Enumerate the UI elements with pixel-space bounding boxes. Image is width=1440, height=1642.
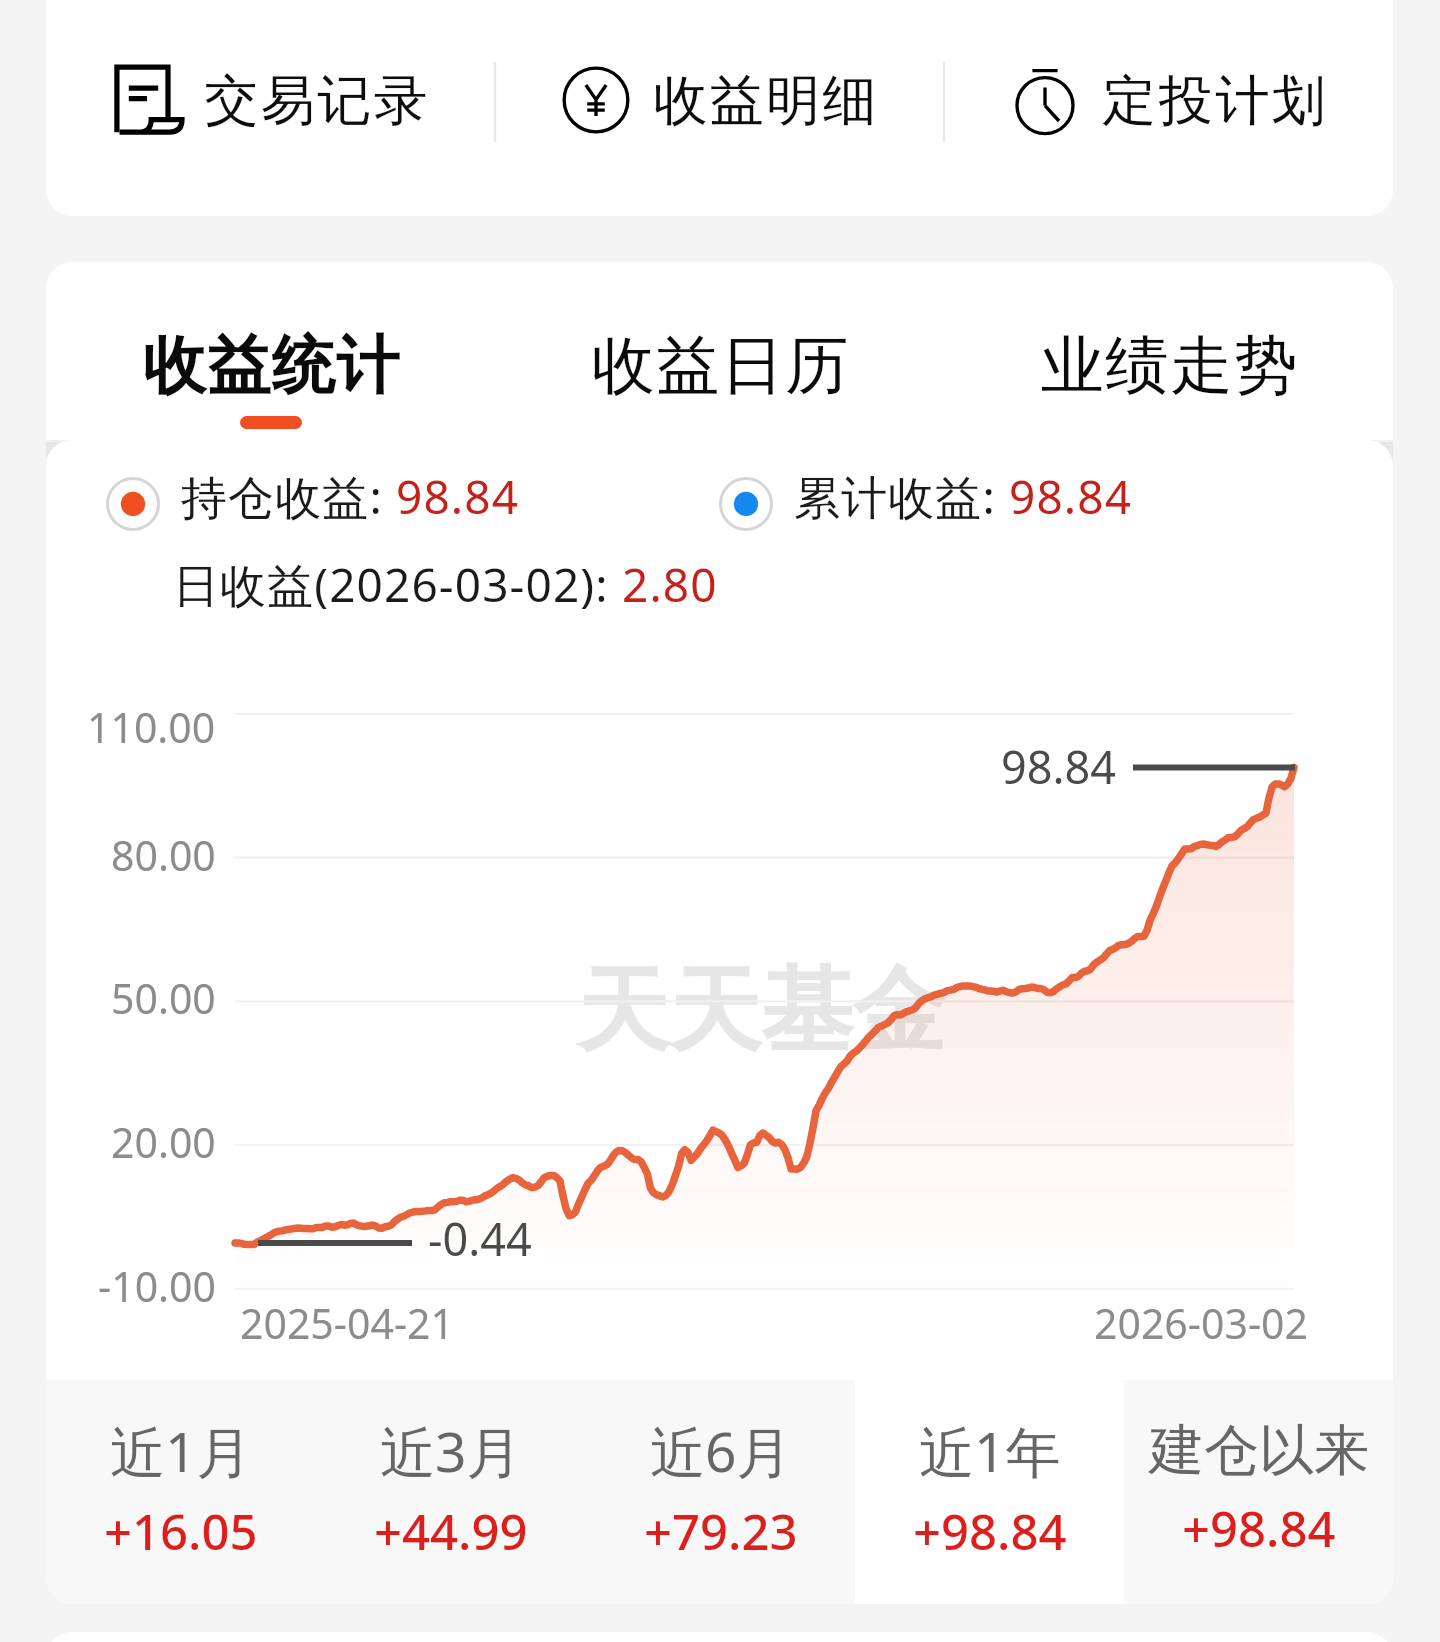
staticText: +98.84	[1182, 1495, 1336, 1562]
staticText: +44.99	[374, 1498, 528, 1565]
staticText: 98.84	[1001, 736, 1117, 797]
staticText: 50.00	[111, 970, 216, 1026]
staticText: 近1年	[919, 1413, 1061, 1488]
staticText: 98.84	[1009, 465, 1133, 528]
staticText: 收益日历	[591, 326, 849, 405]
button[interactable]: 收益日历	[495, 262, 944, 442]
button[interactable]: 近1月	[46, 1380, 316, 1604]
other: 累计收益系列	[719, 477, 773, 531]
staticText: 2026-03-02	[1094, 1295, 1309, 1351]
staticText: 20.00	[111, 1114, 216, 1170]
staticText: 收益明细	[652, 67, 878, 135]
button[interactable]: 业绩走势	[944, 262, 1393, 442]
staticText: 收益统计	[142, 326, 400, 405]
staticText: 近1月	[110, 1413, 252, 1488]
staticText: 日收益(2026-03-02):	[173, 553, 622, 616]
button[interactable]: 近6月	[586, 1380, 855, 1604]
staticText: 累计收益:	[794, 465, 1009, 528]
staticText: 定投计划	[1101, 67, 1327, 135]
staticText: 98.84	[396, 465, 520, 528]
staticText: 交易记录	[203, 67, 429, 135]
staticText: 业绩走势	[1040, 326, 1298, 405]
button[interactable]: 定投计划	[944, 0, 1393, 202]
staticText: +16.05	[104, 1498, 258, 1565]
staticText: 80.00	[111, 827, 216, 883]
staticText: 2.80	[622, 553, 718, 616]
staticText: 建仓以来	[1149, 1416, 1369, 1485]
staticText: 天天基金	[577, 953, 945, 1069]
staticText: 近3月	[380, 1413, 522, 1488]
button[interactable]: 近1年	[855, 1380, 1124, 1604]
other: 持仓收益系列	[106, 477, 160, 531]
button[interactable]: 建仓以来	[1124, 1380, 1393, 1604]
staticText: 2025-04-21	[240, 1295, 455, 1351]
staticText: +79.23	[644, 1498, 798, 1565]
staticText: 110.00	[87, 699, 216, 755]
staticText: 持仓收益:	[181, 465, 396, 528]
button[interactable]: 收益明细	[495, 0, 944, 202]
staticText: 近6月	[650, 1413, 792, 1488]
staticText: -0.44	[428, 1208, 532, 1269]
button[interactable]: 收益统计	[46, 262, 495, 442]
button[interactable]: 近3月	[316, 1380, 586, 1604]
staticText: +98.84	[913, 1498, 1067, 1565]
button[interactable]: 交易记录	[46, 0, 495, 202]
staticText: -10.00	[98, 1258, 216, 1314]
